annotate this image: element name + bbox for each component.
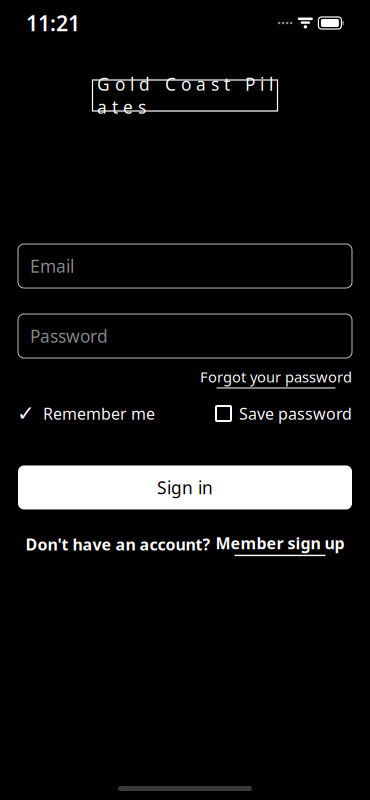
button[interactable]: Forgot your password	[200, 367, 352, 388]
staticText: Remember me	[43, 403, 155, 424]
staticText: G o l d C o a s t P i l a t e s	[97, 72, 273, 118]
staticText: Forgot your password	[200, 367, 352, 386]
staticText: Sign in	[157, 476, 213, 499]
staticText: Don't have an account?	[25, 534, 210, 555]
button[interactable]: Member sign up	[215, 532, 344, 556]
staticText: 11:21	[26, 9, 80, 37]
staticText: Password	[30, 324, 108, 347]
staticText: Email	[30, 254, 74, 277]
staticText: Member sign up	[215, 532, 344, 554]
button[interactable]: Sign in	[18, 465, 352, 509]
button[interactable]: ✓	[18, 401, 155, 425]
button[interactable]: Save password	[216, 401, 352, 425]
staticText: Save password	[239, 403, 352, 424]
staticText: ✓	[17, 401, 35, 426]
